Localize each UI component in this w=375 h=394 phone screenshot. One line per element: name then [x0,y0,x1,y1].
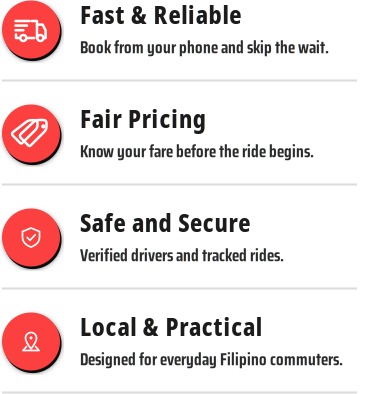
staticText: Designed for everyday Filipino commuters… [80,346,343,373]
staticText: Book from your phone and skip the wait. [80,34,329,61]
staticText: Fast & Reliable [80,0,241,31]
staticText: Fair Pricing [80,102,206,135]
button[interactable]: Fast & Reliable [0,0,375,81]
staticText: Safe and Secure [80,206,250,239]
staticText: Verified drivers and tracked rides. [80,242,284,269]
staticText: Know your fare before the ride begins. [80,138,314,165]
button[interactable]: Fair Pricing [0,81,375,185]
button[interactable]: Local & Practical [0,289,375,393]
button[interactable]: Safe and Secure [0,185,375,289]
staticText: Local & Practical [80,310,262,343]
